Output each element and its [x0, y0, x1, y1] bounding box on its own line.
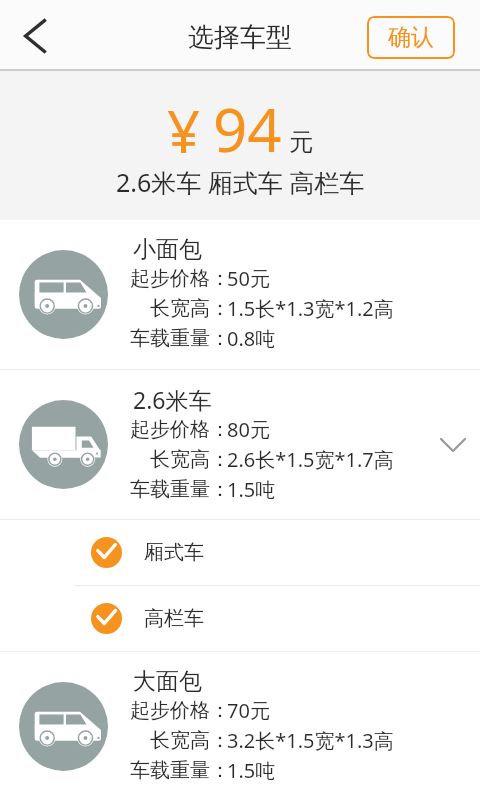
staticText: 起步价格：	[130, 698, 230, 723]
staticText: 0.8吨	[227, 325, 276, 352]
staticText: 车载重量：	[130, 477, 230, 502]
staticText: 厢式车	[144, 540, 204, 565]
staticText: 3.2长*1.5宽*1.3高	[227, 727, 394, 754]
staticText: 长宽高：	[150, 296, 230, 321]
button[interactable]: 2.6米车	[0, 370, 480, 519]
button[interactable]: Back	[0, 0, 70, 69]
staticText: 2.6长*1.5宽*1.7高	[227, 446, 394, 473]
staticText: 50元	[227, 265, 270, 292]
staticText: 元	[289, 127, 313, 157]
button[interactable]: 大面包	[0, 652, 480, 800]
staticText: 2.6米车 厢式车 高栏车	[116, 165, 365, 199]
staticText: ¥	[167, 91, 201, 170]
staticText: 高栏车	[144, 606, 204, 631]
staticText: 94	[213, 88, 282, 170]
button[interactable]: 小面包	[0, 220, 480, 369]
button[interactable]: Expand	[433, 425, 473, 465]
staticText: 车载重量：	[130, 326, 230, 351]
staticText: 长宽高：	[150, 728, 230, 753]
staticText: 2.6米车	[133, 384, 212, 415]
button[interactable]: 厢式车	[0, 520, 480, 585]
staticText: 80元	[227, 416, 270, 443]
staticText: 确认	[388, 23, 434, 52]
staticText: 1.5吨	[227, 757, 276, 784]
staticText: 70元	[227, 697, 270, 724]
button[interactable]: 确认	[367, 16, 455, 59]
staticText: 大面包	[133, 667, 202, 696]
staticText: 小面包	[133, 235, 202, 264]
staticText: 长宽高：	[150, 447, 230, 472]
staticText: 车载重量：	[130, 758, 230, 783]
staticText: 起步价格：	[130, 417, 230, 442]
staticText: 1.5长*1.3宽*1.2高	[227, 295, 394, 322]
button[interactable]: 高栏车	[0, 586, 480, 651]
staticText: 起步价格：	[130, 266, 230, 291]
staticText: 选择车型	[188, 21, 292, 54]
staticText: 1.5吨	[227, 476, 276, 503]
